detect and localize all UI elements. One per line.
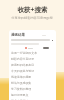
staticText: 阅读清单的摘要 [11, 75, 32, 79]
staticText: 每日记录要点 [11, 93, 29, 97]
staticText: 更多内容阅读 [11, 99, 29, 100]
staticText: 分享你的精彩内容与奇思妙想 [11, 16, 53, 20]
staticText: 搜索结果 [11, 33, 25, 37]
staticText: 今天的收获与笔记 [11, 69, 35, 73]
staticText: 精彩内容分享记录 [11, 57, 35, 61]
staticText: 搜索到的结果条目 [11, 63, 35, 67]
staticText: 这是一行说明的文本 [11, 51, 38, 55]
staticText: 学习资料的整理 [11, 87, 32, 91]
staticText: 想法与灵感收集 [11, 81, 32, 85]
staticText: 收获+搜索 [17, 5, 48, 14]
